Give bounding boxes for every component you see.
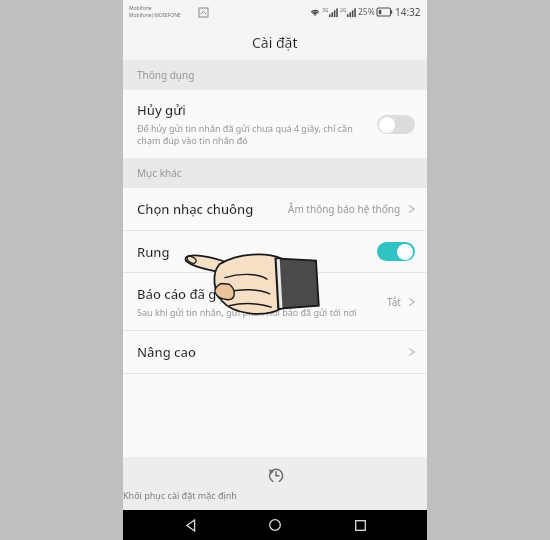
staticText: Sau khi gửi tin nhắn, gửi phản hồi báo đ… bbox=[137, 306, 357, 318]
button[interactable]: Hủy gửi bbox=[123, 90, 427, 158]
staticText: 14:32 bbox=[395, 5, 421, 19]
staticText: Mobifone bbox=[129, 5, 152, 12]
button[interactable]: On bbox=[377, 242, 415, 261]
staticText: 3G bbox=[322, 7, 329, 14]
button[interactable]: Off bbox=[377, 115, 415, 134]
staticText: Khôi phục cài đặt mặc định bbox=[123, 489, 427, 501]
button[interactable]: Nâng cao bbox=[123, 331, 427, 373]
staticText: 25% bbox=[358, 6, 375, 18]
button[interactable]: Restore defaults bbox=[123, 457, 427, 510]
staticText: Báo cáo đã gửi bbox=[137, 285, 229, 303]
staticText: Nâng cao bbox=[137, 343, 196, 361]
button[interactable]: Home bbox=[258, 510, 292, 540]
button[interactable]: Recents bbox=[343, 510, 377, 540]
staticText: Âm thông báo hệ thống bbox=[288, 202, 401, 216]
staticText: 2G bbox=[340, 7, 347, 14]
other: Restore defaults bbox=[266, 466, 284, 484]
staticText: Mobifone|MOBIFONE bbox=[129, 12, 181, 19]
staticText: Để hủy gửi tin nhắn đã gửi chưa quá 4 gi… bbox=[137, 122, 353, 147]
button[interactable]: Chọn nhạc chuông bbox=[123, 188, 427, 230]
staticText: Chọn nhạc chuông bbox=[137, 200, 254, 218]
button[interactable]: Back bbox=[174, 510, 208, 540]
staticText: Mục khác bbox=[137, 166, 182, 180]
staticText: Tắt bbox=[387, 295, 401, 309]
staticText: Cài đặt bbox=[252, 33, 298, 52]
staticText: Hủy gửi bbox=[137, 101, 186, 119]
button[interactable]: Báo cáo đã gửi bbox=[123, 273, 427, 330]
staticText: Rung bbox=[137, 243, 170, 261]
button[interactable]: Rung bbox=[123, 231, 427, 272]
staticText: Thông dụng bbox=[137, 68, 195, 82]
